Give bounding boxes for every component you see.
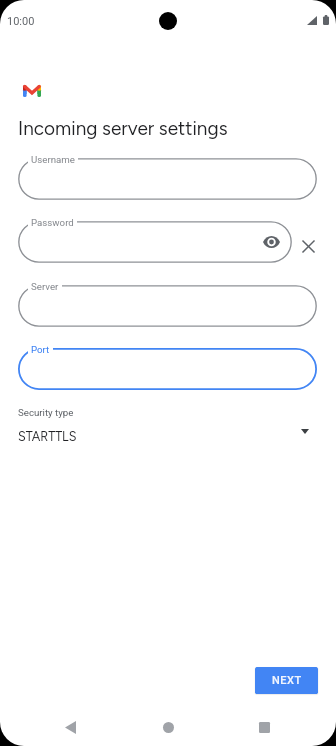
staticText: Incoming server settings <box>18 117 228 140</box>
button[interactable]: Back <box>48 709 93 745</box>
staticText: Server <box>31 281 59 292</box>
staticText: Port <box>31 344 50 355</box>
staticText: Security type <box>18 407 74 418</box>
button[interactable]: Port <box>18 348 317 390</box>
button[interactable]: Recent apps <box>242 709 287 745</box>
button[interactable]: NEXT <box>255 667 318 694</box>
staticText: 10:00 <box>7 15 35 28</box>
staticText: STARTTLS <box>18 429 77 444</box>
staticText: Username <box>31 154 75 165</box>
button[interactable]: Clear password <box>296 234 320 258</box>
staticText: NEXT <box>272 674 302 687</box>
button[interactable]: Username <box>18 158 317 200</box>
button[interactable]: Password <box>18 221 292 263</box>
button[interactable]: Security type <box>0 400 336 446</box>
staticText: Password <box>31 217 74 228</box>
button[interactable]: Home <box>146 709 191 745</box>
button[interactable]: Show password <box>259 230 283 254</box>
button[interactable]: Server <box>18 285 317 327</box>
